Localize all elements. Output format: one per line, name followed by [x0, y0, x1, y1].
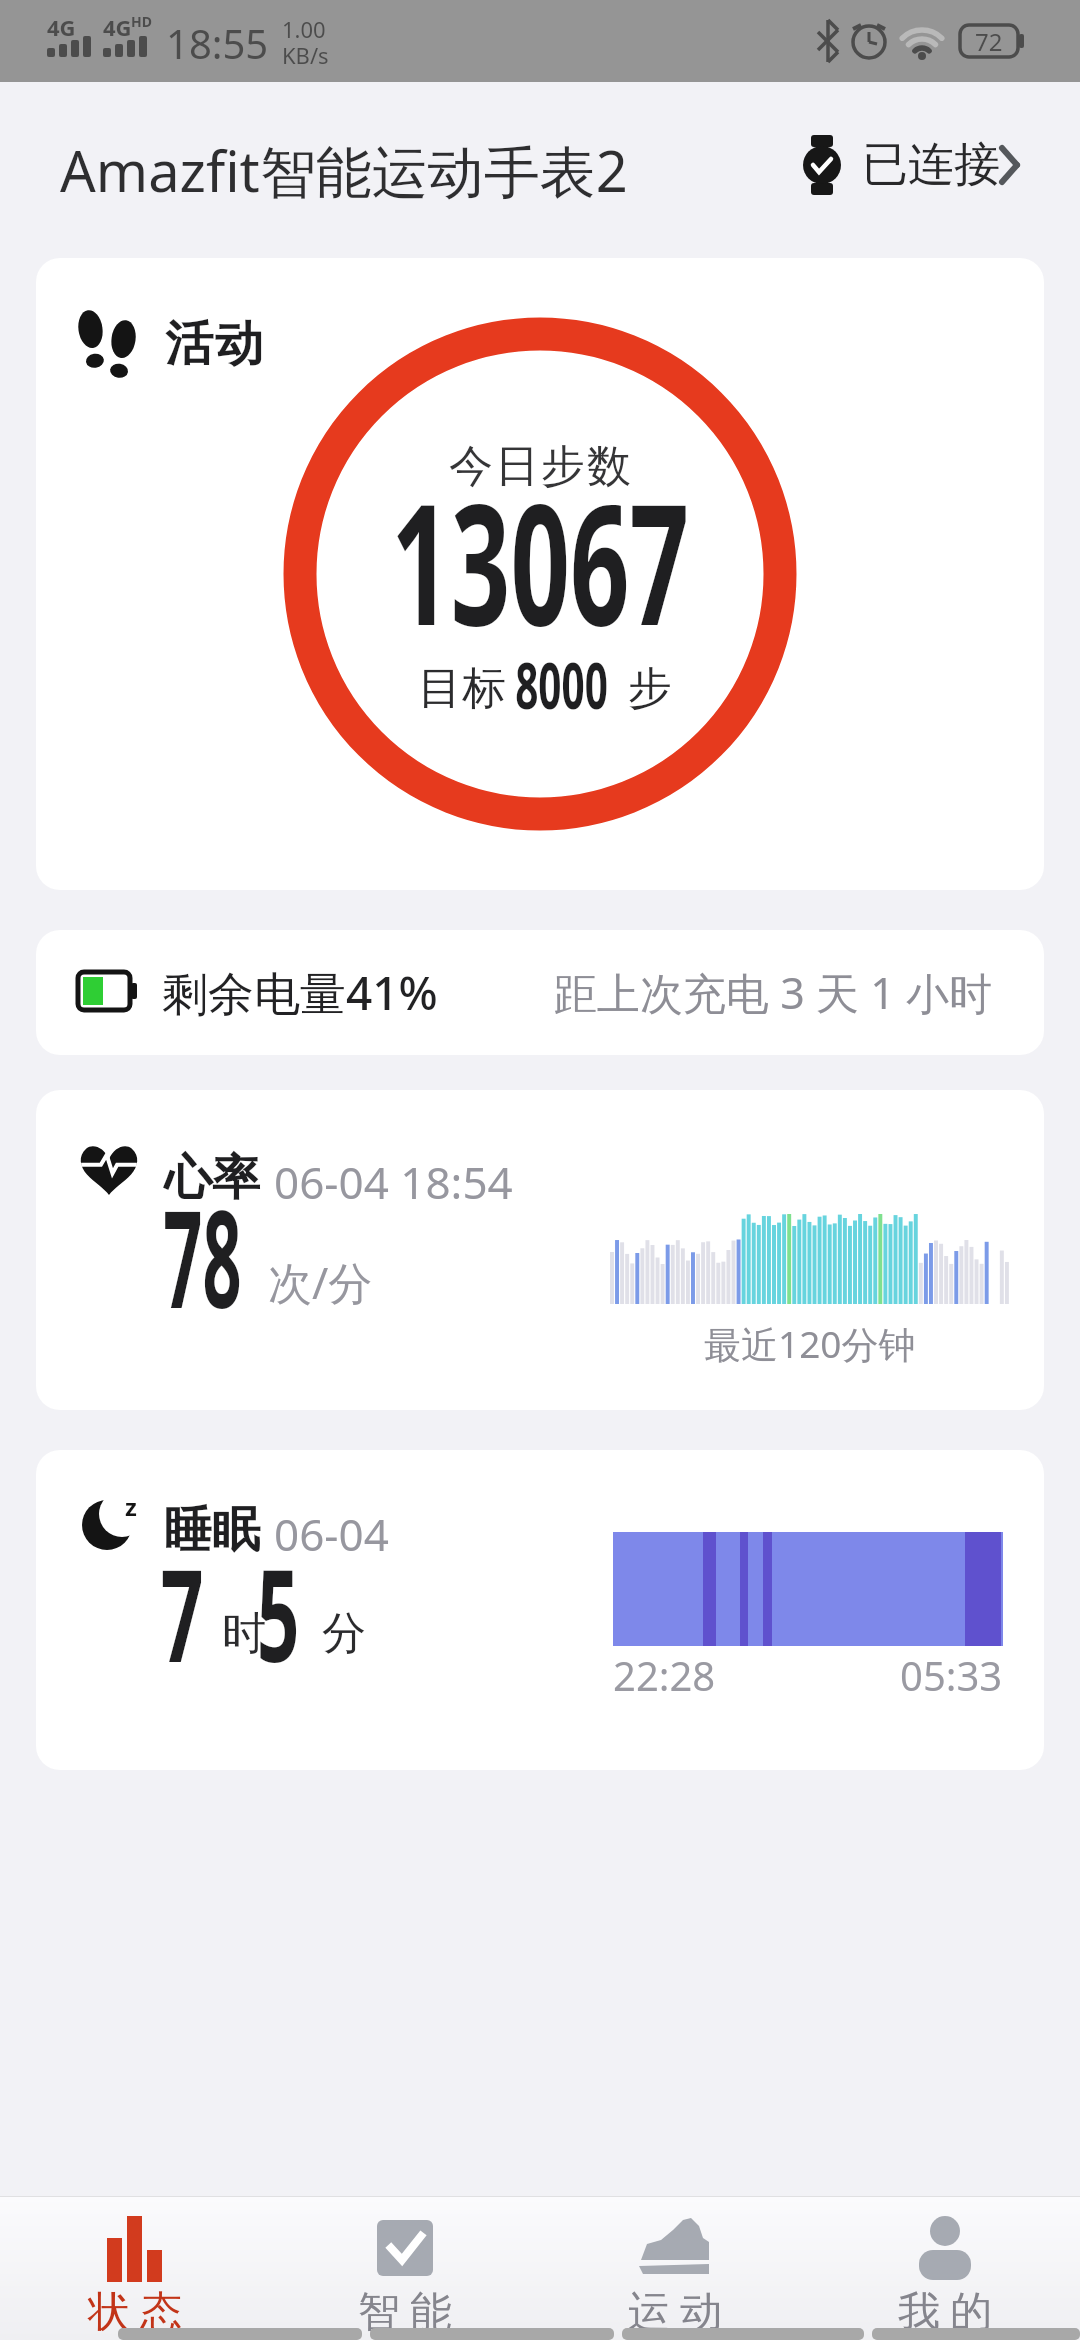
staticText: KB/s — [282, 40, 329, 70]
staticText: 06-04 — [274, 1504, 389, 1564]
staticText: 状态 — [83, 2286, 187, 2339]
staticText: 心率 — [164, 1148, 260, 1208]
staticText: 8000 — [515, 639, 608, 728]
staticText: 剩余电量41% — [162, 961, 438, 1024]
staticText: 睡眠 — [164, 1500, 260, 1560]
staticText: HD — [131, 12, 152, 31]
button[interactable]: 剩余电量41% — [36, 930, 1044, 1055]
staticText: 距上次充电 3 天 1 小时 — [554, 963, 992, 1022]
staticText: 5 — [257, 1527, 300, 1671]
staticText: 4G — [103, 12, 132, 42]
staticText: 18:55 — [166, 16, 269, 70]
staticText: 活动 — [164, 314, 264, 374]
button[interactable]: z — [36, 1450, 1044, 1770]
staticText: 1.00 — [282, 14, 326, 44]
staticText: 次/分 — [268, 1252, 373, 1312]
button[interactable]: 我的 — [810, 2196, 1080, 2340]
staticText: 4G — [47, 12, 76, 42]
staticText: 06-04 18:54 — [274, 1152, 513, 1212]
staticText: 22:28 — [613, 1648, 716, 1702]
button[interactable]: 活动 — [36, 258, 1044, 890]
staticText: Amazfit智能运动手表2 — [60, 132, 628, 208]
staticText: 智能 — [353, 2286, 457, 2339]
staticText: 步 — [628, 661, 672, 716]
staticText: z — [125, 1490, 137, 1520]
button[interactable]: 已连接 — [790, 120, 1040, 210]
staticText: 时 — [222, 1606, 266, 1661]
staticText: 已连接 — [862, 136, 1000, 194]
staticText: 今日步数 — [448, 439, 632, 494]
staticText: 78 — [163, 1163, 242, 1328]
staticText: 7 — [161, 1527, 204, 1671]
button[interactable]: 智能 — [270, 2196, 540, 2340]
staticText: 我的 — [893, 2286, 997, 2339]
staticText: 13067 — [391, 446, 690, 654]
staticText: 分 — [322, 1606, 366, 1661]
staticText: 05:33 — [900, 1648, 1003, 1698]
staticText: 目标 — [418, 661, 506, 716]
staticText: 72 — [975, 25, 1003, 57]
staticText: 运动 — [623, 2286, 727, 2339]
button[interactable]: 运动 — [540, 2196, 810, 2340]
staticText: 最近120分钟 — [704, 1318, 916, 1368]
button[interactable]: 状态 — [0, 2196, 270, 2340]
button[interactable]: 心率 — [36, 1090, 1044, 1410]
